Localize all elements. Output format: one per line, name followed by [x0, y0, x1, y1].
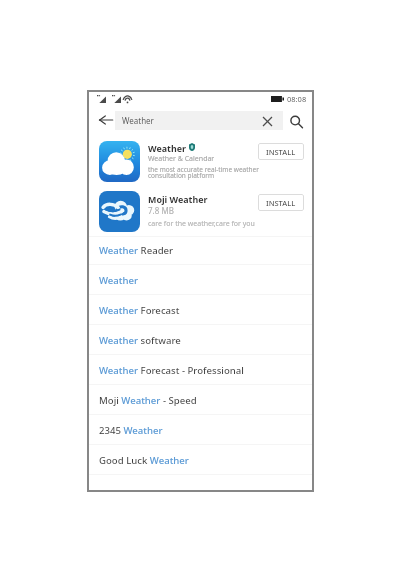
staticText: Weather Reader	[99, 244, 174, 257]
staticText: 08:08	[287, 94, 307, 104]
staticText: care for the weather,care for you	[148, 219, 255, 229]
button[interactable]: Weather software	[88, 325, 313, 355]
staticText: 7.8 MB	[148, 205, 174, 216]
staticText: Weather Forecast - Professional	[99, 364, 244, 377]
staticText: Weather	[148, 142, 186, 154]
staticText: INSTALL	[266, 198, 296, 208]
staticText: Moji Weather	[148, 193, 208, 205]
button[interactable]: Clear text	[260, 114, 274, 128]
staticText: Weather	[122, 115, 154, 126]
button[interactable]: Weather	[88, 134, 313, 184]
button[interactable]: INSTALL	[258, 194, 304, 211]
button[interactable]: Moji Weather - Speed	[88, 385, 313, 415]
staticText: the most accurate real-time weather cons…	[148, 165, 259, 180]
button[interactable]: Search	[288, 113, 305, 130]
staticText: Weather	[99, 274, 139, 287]
button[interactable]: Weather Reader	[88, 235, 313, 265]
button[interactable]: Weather Forecast	[88, 295, 313, 325]
staticText: Weather software	[99, 334, 181, 347]
button[interactable]: 2345 Weather	[88, 415, 313, 445]
button[interactable]: INSTALL	[258, 143, 304, 160]
button[interactable]: Weather	[115, 111, 283, 130]
staticText: Weather & Calendar	[148, 154, 215, 164]
button[interactable]: Moji Weather	[88, 186, 313, 234]
staticText: Moji Weather - Speed	[99, 394, 197, 407]
staticText: Weather Forecast	[99, 304, 180, 317]
button[interactable]: Back	[96, 110, 116, 130]
button[interactable]: Weather	[88, 265, 313, 295]
button[interactable]: Weather Forecast - Professional	[88, 355, 313, 385]
staticText: 2345 Weather	[99, 424, 163, 437]
staticText: INSTALL	[266, 147, 296, 157]
staticText: Good Luck Weather	[99, 454, 189, 467]
button[interactable]: Good Luck Weather	[88, 445, 313, 475]
